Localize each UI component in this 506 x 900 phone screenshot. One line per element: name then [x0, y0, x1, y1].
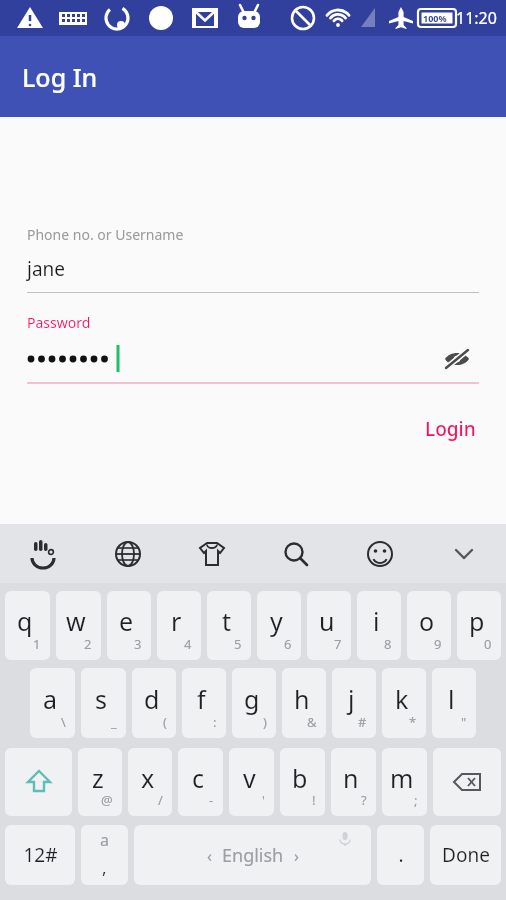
button[interactable]: r: [157, 591, 201, 660]
button[interactable]: Shift: [5, 748, 72, 816]
staticText: f: [197, 682, 206, 716]
staticText: 100%: [423, 12, 447, 24]
staticText: e: [119, 604, 134, 638]
staticText: \: [61, 713, 66, 731]
button[interactable]: d: [132, 668, 176, 738]
staticText: #: [358, 713, 367, 731]
button[interactable]: a: [81, 825, 128, 885]
staticText: jane: [27, 256, 66, 282]
staticText: p: [469, 604, 485, 638]
staticText: y: [270, 604, 283, 638]
staticText: :: [213, 713, 217, 731]
button[interactable]: 12#: [5, 825, 75, 885]
button[interactable]: Search: [254, 524, 338, 583]
staticText: ,: [102, 856, 107, 879]
staticText: 1: [33, 635, 41, 653]
staticText: Phone no. or Username: [27, 225, 184, 244]
staticText: 7: [334, 635, 342, 653]
button[interactable]: Phone no. or Username: [27, 225, 479, 293]
staticText: Log In: [22, 60, 98, 94]
button[interactable]: f: [182, 668, 226, 738]
button[interactable]: v: [229, 748, 274, 816]
staticText: 8: [384, 635, 392, 653]
button[interactable]: Toggle password visibility: [435, 342, 479, 376]
staticText: &: [307, 713, 317, 731]
button[interactable]: w: [56, 591, 101, 660]
button[interactable]: Theme: [170, 524, 254, 583]
staticText: /: [158, 791, 163, 809]
button[interactable]: h: [282, 668, 326, 738]
button[interactable]: e: [107, 591, 151, 660]
staticText: Login: [425, 416, 476, 442]
button[interactable]: o: [407, 591, 451, 660]
staticText: u: [319, 604, 335, 638]
button[interactable]: ‹: [134, 825, 371, 885]
staticText: b: [292, 761, 308, 795]
button[interactable]: k: [382, 668, 426, 738]
staticText: t: [222, 604, 232, 638]
button[interactable]: b: [280, 748, 325, 816]
staticText: v: [243, 761, 256, 795]
staticText: d: [144, 682, 160, 716]
staticText: 2: [84, 635, 92, 653]
button[interactable]: Login: [413, 408, 488, 450]
button[interactable]: Language: [85, 524, 170, 583]
staticText: 0: [484, 635, 492, 653]
staticText: English: [222, 843, 284, 868]
staticText: (: [163, 713, 167, 731]
button[interactable]: x: [128, 748, 172, 816]
staticText: k: [395, 682, 409, 716]
button[interactable]: Handwriting: [0, 524, 85, 583]
staticText: 11:20: [456, 7, 497, 29]
staticText: h: [294, 682, 310, 716]
staticText: w: [66, 604, 86, 638]
button[interactable]: g: [232, 668, 276, 738]
button[interactable]: q: [5, 591, 50, 660]
staticText: Done: [442, 842, 490, 868]
staticText: ': [262, 791, 265, 809]
staticText: 5: [234, 635, 242, 653]
button[interactable]: u: [307, 591, 351, 660]
button[interactable]: y: [257, 591, 301, 660]
staticText: 4: [184, 635, 192, 653]
button[interactable]: i: [357, 591, 401, 660]
staticText: .: [398, 842, 404, 868]
staticText: @: [101, 791, 113, 809]
button[interactable]: s: [81, 668, 126, 738]
button[interactable]: l: [432, 668, 476, 738]
staticText: q: [17, 604, 33, 638]
button[interactable]: p: [457, 591, 501, 660]
staticText: 3: [134, 635, 142, 653]
staticText: 6: [284, 635, 292, 653]
staticText: i: [373, 604, 380, 638]
staticText: r: [171, 604, 182, 638]
button[interactable]: n: [331, 748, 376, 816]
button[interactable]: z: [78, 748, 122, 816]
button[interactable]: t: [207, 591, 251, 660]
staticText: *: [409, 713, 417, 731]
button[interactable]: c: [178, 748, 223, 816]
button[interactable]: Emoji: [338, 524, 422, 583]
button[interactable]: j: [332, 668, 376, 738]
staticText: ": [461, 713, 467, 731]
staticText: n: [343, 761, 359, 795]
staticText: 9: [434, 635, 442, 653]
button[interactable]: Done: [430, 825, 501, 885]
staticText: ?: [361, 791, 367, 809]
staticText: ‹: [207, 845, 212, 867]
button[interactable]: a: [30, 668, 75, 738]
staticText: c: [192, 761, 205, 795]
button[interactable]: Hide keyboard: [422, 524, 506, 583]
staticText: ): [263, 713, 267, 731]
staticText: z: [92, 761, 104, 795]
staticText: _: [111, 713, 117, 731]
staticText: s: [95, 682, 107, 716]
button[interactable]: Backspace: [433, 748, 501, 816]
staticText: ›: [294, 845, 299, 867]
staticText: m: [390, 761, 414, 795]
button[interactable]: m: [382, 748, 427, 816]
button[interactable]: Password: [27, 313, 479, 384]
button[interactable]: Log In: [0, 36, 506, 117]
staticText: a: [100, 829, 109, 851]
button[interactable]: .: [377, 825, 424, 885]
